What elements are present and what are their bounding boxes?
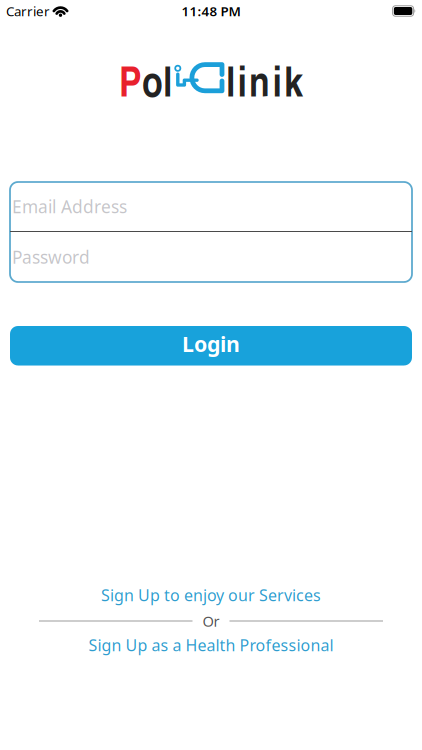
staticText: Sign Up as a Health Professional [88,634,333,656]
staticText: Password [12,245,90,268]
staticText: Email Address [12,195,127,218]
staticText: P [119,51,142,109]
button[interactable]: Sign Up to enjoy our Services [101,585,321,605]
staticText: ol [142,51,172,109]
staticText: Login [182,330,240,358]
staticText: Or [202,611,219,631]
button[interactable]: Password [10,232,412,282]
button[interactable]: Login [10,326,412,365]
button[interactable]: Sign Up as a Health Professional [88,635,333,655]
staticText: 11:48 PM [181,2,240,20]
staticText: Sign Up to enjoy our Services [101,584,321,606]
staticText: linik [226,51,303,109]
button[interactable]: Email Address [10,182,412,231]
staticText: Carrier [6,2,50,20]
